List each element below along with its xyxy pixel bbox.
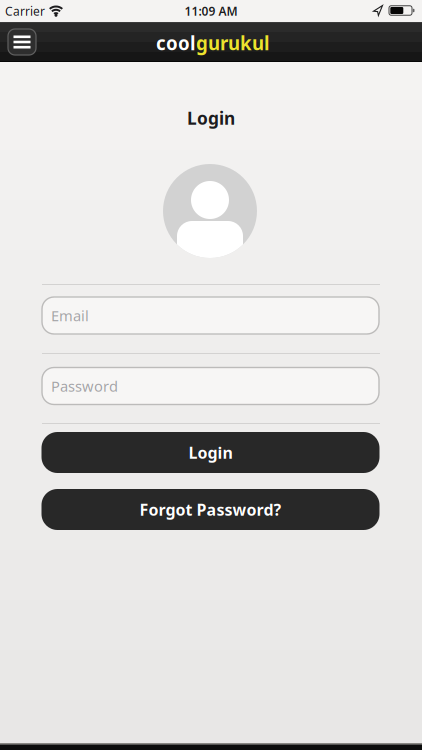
staticText: Password — [51, 376, 118, 396]
button[interactable]: Menu — [8, 29, 36, 55]
button[interactable]: Email — [42, 297, 379, 334]
staticText: Email — [51, 306, 89, 325]
staticText: cool — [156, 31, 196, 55]
button[interactable]: Login — [41, 432, 379, 473]
staticText: Forgot Password? — [139, 499, 281, 520]
staticText: 11:09 AM — [184, 3, 237, 19]
button[interactable]: Forgot Password? — [41, 489, 379, 530]
button[interactable]: Password — [42, 367, 379, 404]
staticText: Login — [188, 442, 232, 463]
staticText: gurukul — [196, 31, 270, 55]
staticText: Login — [187, 106, 235, 129]
staticText: Carrier — [5, 3, 45, 19]
